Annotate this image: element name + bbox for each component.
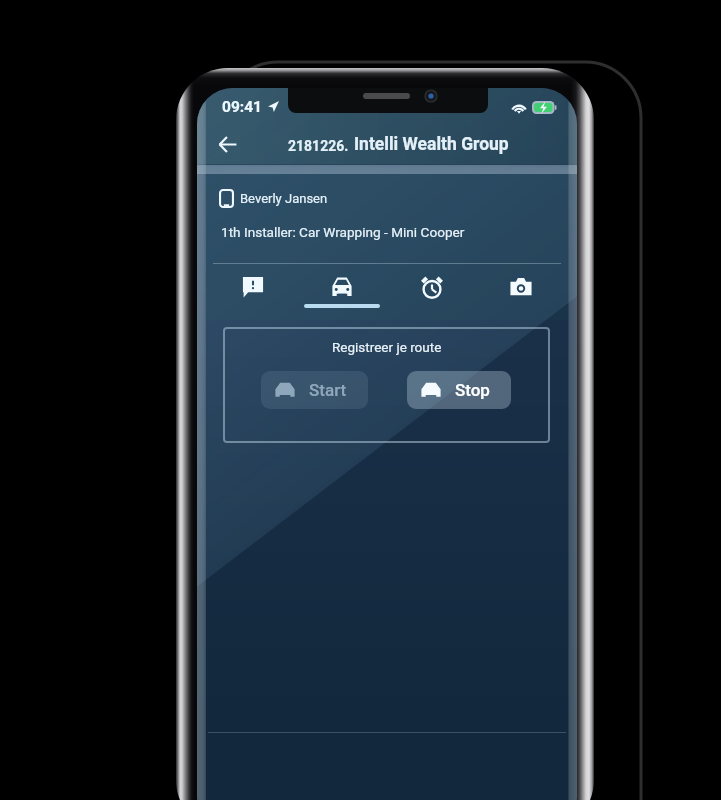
button[interactable]: Camera — [477, 268, 565, 308]
staticText: Stop — [455, 380, 490, 400]
button[interactable]: Messages — [209, 268, 297, 308]
staticText: 1th Installer: Car Wrapping - Mini Coope… — [221, 224, 465, 240]
staticText: Registreer je route — [332, 339, 442, 355]
button[interactable]: Back — [208, 125, 246, 163]
staticText: Beverly Jansen — [240, 191, 328, 206]
button[interactable]: Stop — [407, 371, 511, 409]
staticText: Intelli Wealth Group — [354, 134, 509, 155]
staticText: 09:41 — [222, 98, 262, 116]
staticText: 2181226. — [288, 138, 349, 154]
button[interactable]: Alarm — [388, 268, 476, 308]
button[interactable]: Start — [261, 371, 368, 409]
button[interactable]: Route — [298, 268, 386, 308]
staticText: Start — [309, 380, 347, 400]
